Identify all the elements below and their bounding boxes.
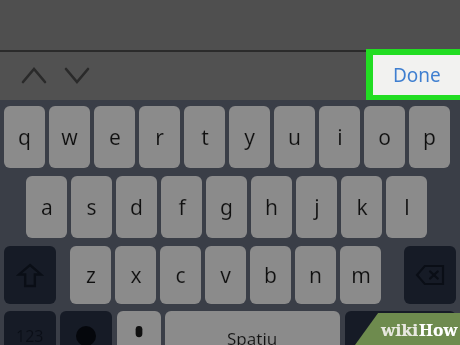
button[interactable]: o [364,106,405,168]
button[interactable]: j [296,176,337,238]
staticText: g [220,193,233,222]
button[interactable]: Emoji [60,311,112,345]
staticText: k [356,193,368,222]
button[interactable]: h [251,176,292,238]
button[interactable]: v [205,246,246,304]
button[interactable]: w [49,106,90,168]
staticText: d [130,193,143,222]
staticText: r [155,123,164,152]
staticText: u [288,123,301,152]
button[interactable]: x [115,246,156,304]
staticText: h [265,193,278,222]
button[interactable]: l [386,176,427,238]
staticText: How [419,318,458,341]
button[interactable]: Previous field [14,56,54,94]
button[interactable]: Done [366,49,460,101]
button[interactable]: r [139,106,180,168]
button[interactable]: Voice input [117,311,161,345]
staticText: 123 [16,325,44,345]
staticText: b [264,261,277,290]
staticText: v [220,261,231,290]
button[interactable]: d [116,176,157,238]
staticText: w [61,123,78,152]
button[interactable]: a [26,176,67,238]
button[interactable]: b [250,246,291,304]
staticText: c [175,261,186,290]
button[interactable]: g [206,176,247,238]
staticText: p [423,123,436,152]
staticText: l [404,193,410,222]
staticText: o [378,123,391,152]
button[interactable]: s [71,176,112,238]
staticText: f [178,193,186,222]
button[interactable]: z [70,246,111,304]
staticText: Spatiu [227,327,278,345]
staticText: t [201,123,209,152]
button[interactable]: c [160,246,201,304]
button[interactable]: m [340,246,381,304]
button[interactable]: t [184,106,225,168]
staticText: x [130,261,142,290]
button[interactable]: y [229,106,270,168]
staticText: a [41,193,53,222]
button[interactable]: f [161,176,202,238]
staticText: z [86,261,96,290]
staticText: y [244,123,255,152]
button[interactable]: Backspace [404,246,456,304]
button[interactable]: 123 [4,311,56,345]
button[interactable]: Next field [57,56,97,94]
button[interactable]: p [409,106,450,168]
staticText: e [109,123,121,152]
staticText: j [314,193,320,222]
button[interactable]: Spatiu [165,311,340,345]
button[interactable]: u [274,106,315,168]
staticText: wiki [381,318,419,341]
staticText: m [351,261,371,290]
button[interactable]: q [4,106,45,168]
staticText: q [18,123,31,152]
staticText: i [337,123,343,152]
staticText: n [309,261,322,290]
staticText: Done [393,62,441,88]
button[interactable]: Enter [345,311,456,345]
button[interactable]: i [319,106,360,168]
button[interactable]: e [94,106,135,168]
button[interactable]: Shift [4,246,56,304]
button[interactable]: n [295,246,336,304]
staticText: s [86,193,97,222]
button[interactable]: k [341,176,382,238]
